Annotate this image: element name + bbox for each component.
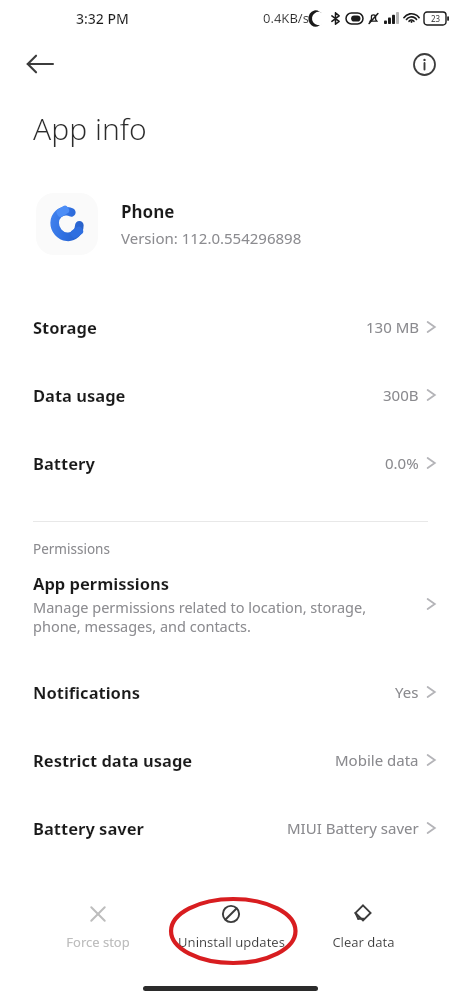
button[interactable]: Storage — [0, 293, 461, 361]
staticText: Mobile data — [335, 750, 419, 770]
staticText: Clear data — [332, 933, 395, 951]
staticText: 0.0% — [385, 453, 419, 473]
staticText: MIUI Battery saver — [287, 818, 419, 838]
staticText: 23 — [431, 13, 441, 24]
staticText: Version: 112.0.554296898 — [121, 228, 302, 248]
staticText: Phone — [121, 200, 175, 223]
button[interactable]: Restrict data usage — [0, 726, 461, 794]
button[interactable]: App permissions — [0, 570, 461, 638]
staticText: Permissions — [33, 540, 110, 558]
staticText: Restrict data usage — [33, 749, 193, 771]
staticText: 3:32 PM — [76, 9, 129, 28]
button[interactable]: Notifications — [0, 658, 461, 726]
staticText: Notifications — [33, 681, 140, 703]
staticText: 0.4KB/s — [263, 9, 309, 27]
staticText: Battery saver — [33, 817, 144, 839]
button[interactable]: Data usage — [0, 361, 461, 429]
staticText: Force stop — [66, 933, 130, 951]
button[interactable]: Clear data — [309, 896, 417, 955]
staticText: App info — [33, 108, 147, 149]
button[interactable]: Battery — [0, 429, 461, 497]
button[interactable]: Battery saver — [0, 794, 461, 862]
staticText: Storage — [33, 316, 97, 338]
button[interactable]: Back — [22, 46, 58, 82]
staticText: 300B — [383, 385, 419, 405]
staticText: Yes — [395, 682, 419, 702]
staticText: Battery — [33, 452, 95, 474]
button[interactable]: Uninstall updates — [177, 896, 285, 955]
staticText: App permissions — [33, 572, 170, 594]
staticText: Manage permissions related to location, … — [33, 597, 367, 636]
staticText: 130 MB — [366, 317, 419, 337]
button[interactable]: Force stop — [44, 896, 152, 955]
staticText: Data usage — [33, 384, 126, 406]
button[interactable]: App details info — [409, 49, 439, 79]
staticText: Uninstall updates — [178, 933, 285, 951]
